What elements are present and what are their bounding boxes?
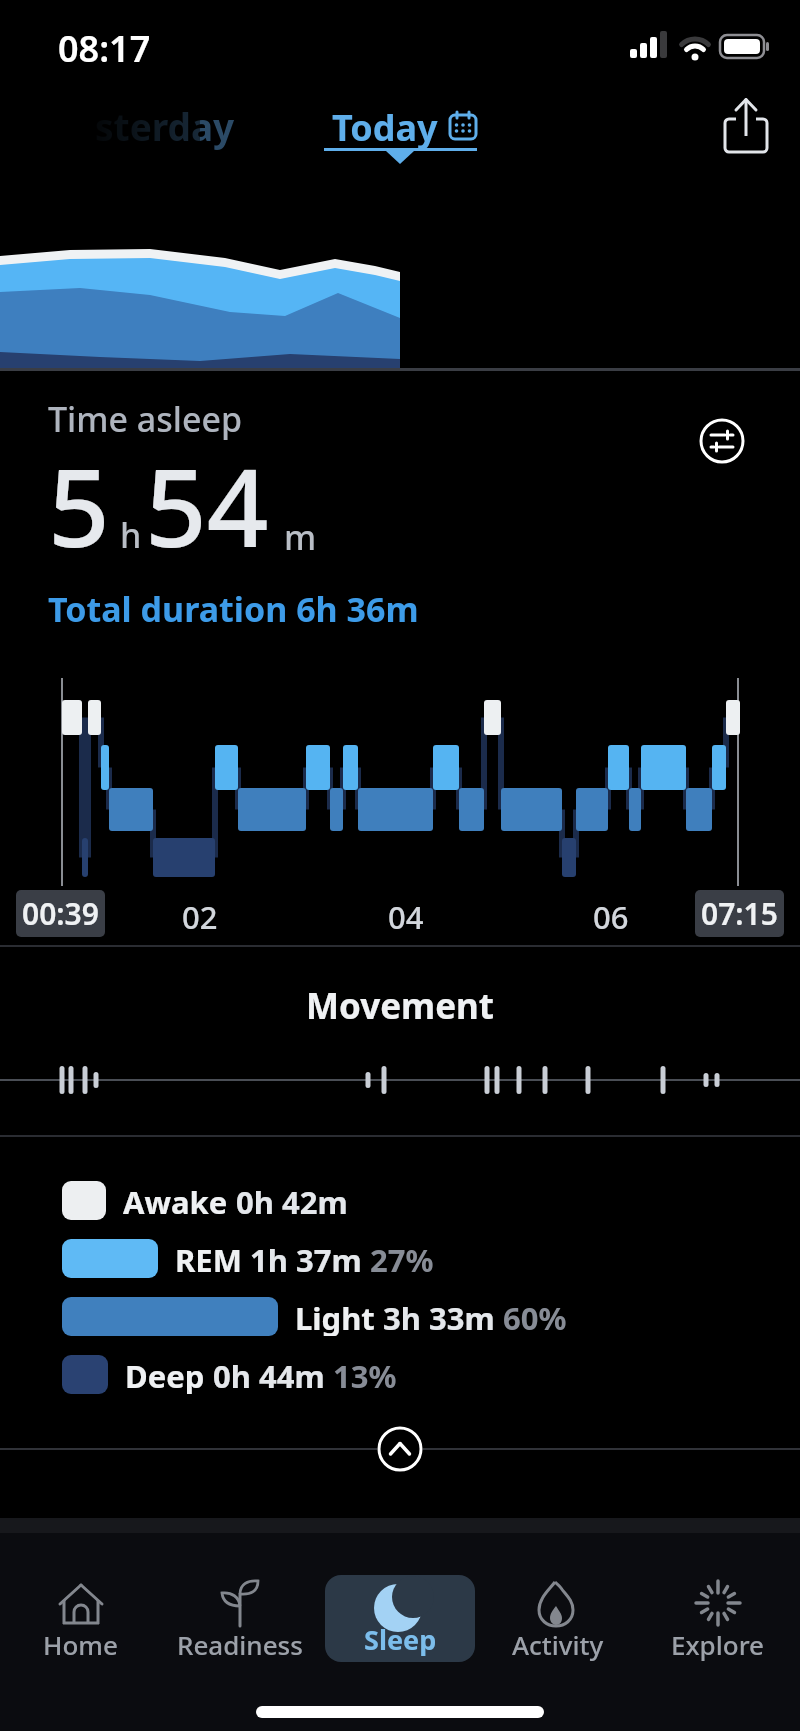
staticText: Explore bbox=[671, 1627, 765, 1662]
button[interactable] bbox=[698, 417, 746, 465]
staticText: Total duration 6h 36m bbox=[48, 586, 419, 632]
button[interactable] bbox=[722, 98, 770, 154]
staticText: 27% bbox=[370, 1239, 434, 1278]
staticText: 3h 33m bbox=[383, 1297, 495, 1336]
staticText: Home bbox=[43, 1627, 118, 1662]
staticText: 5 bbox=[48, 432, 110, 579]
staticText: 60% bbox=[503, 1297, 567, 1336]
button[interactable]: Today bbox=[320, 95, 500, 170]
staticText: Deep bbox=[125, 1355, 205, 1394]
button[interactable]: Activity bbox=[495, 1570, 620, 1670]
staticText: 04 bbox=[388, 896, 424, 938]
staticText: 1h 37m bbox=[250, 1239, 362, 1278]
staticText: sterday bbox=[95, 101, 235, 151]
staticText: h bbox=[120, 512, 142, 558]
staticText: Activity bbox=[512, 1627, 604, 1662]
button[interactable]: sterday bbox=[0, 95, 240, 155]
staticText: Time asleep bbox=[48, 396, 243, 442]
staticText: 0h 42m bbox=[236, 1181, 348, 1220]
staticText: 02 bbox=[182, 896, 218, 938]
staticText: 07:15 bbox=[701, 893, 778, 934]
staticText: 13% bbox=[333, 1355, 397, 1394]
staticText: Today bbox=[332, 103, 438, 152]
staticText: Movement bbox=[0, 982, 800, 1030]
button[interactable]: Explore bbox=[655, 1570, 780, 1670]
staticText: 08:17 bbox=[58, 24, 151, 73]
staticText: Readiness bbox=[177, 1627, 303, 1662]
staticText: 54 bbox=[145, 432, 269, 579]
button[interactable]: Sleep bbox=[325, 1575, 475, 1662]
staticText: m bbox=[284, 514, 317, 560]
button[interactable] bbox=[376, 1425, 424, 1473]
staticText: 06 bbox=[593, 896, 629, 938]
staticText: Light bbox=[295, 1297, 375, 1336]
staticText: Awake bbox=[123, 1181, 228, 1220]
staticText: REM bbox=[175, 1239, 242, 1278]
button[interactable]: Readiness bbox=[150, 1570, 330, 1670]
staticText: 0h 44m bbox=[213, 1355, 325, 1394]
button[interactable]: Home bbox=[28, 1570, 133, 1670]
staticText: Sleep bbox=[364, 1621, 437, 1658]
staticText: 00:39 bbox=[22, 893, 99, 934]
